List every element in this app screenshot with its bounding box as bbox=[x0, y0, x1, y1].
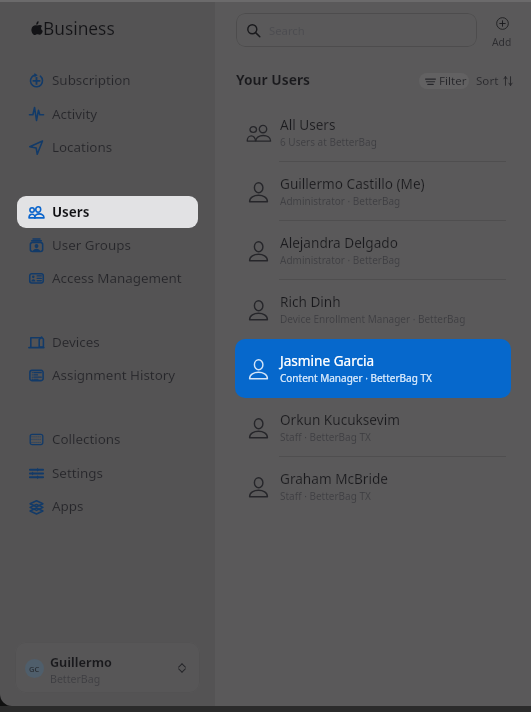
button[interactable]: Jasmine Garcia bbox=[235, 339, 511, 398]
staticText: Users bbox=[52, 203, 90, 221]
button[interactable]: Locations bbox=[17, 131, 198, 163]
staticText: BetterBag bbox=[50, 672, 101, 686]
staticText: Search bbox=[269, 23, 305, 38]
staticText: Administrator · BetterBag bbox=[280, 253, 401, 267]
button[interactable]: Search bbox=[236, 13, 477, 47]
staticText: Rich Dinh bbox=[280, 292, 341, 311]
staticText: Device Enrollment Manager · BetterBag bbox=[280, 312, 466, 326]
staticText: Staff · BetterBag TX bbox=[280, 489, 371, 503]
staticText: All Users bbox=[280, 115, 336, 134]
staticText: Devices bbox=[52, 333, 100, 351]
button[interactable]: Access Management bbox=[17, 262, 198, 294]
button[interactable]: Sort bbox=[476, 73, 514, 89]
staticText: User Groups bbox=[52, 236, 131, 254]
staticText: Access Management bbox=[52, 269, 182, 287]
button[interactable]: Collections bbox=[17, 423, 198, 455]
staticText: Locations bbox=[52, 138, 113, 156]
staticText: Alejandra Delgado bbox=[280, 233, 398, 252]
staticText: Jasmine Garcia bbox=[280, 351, 375, 370]
staticText: Staff · BetterBag TX bbox=[280, 430, 371, 444]
button[interactable]: Orkun Kucuksevim bbox=[235, 398, 511, 457]
staticText: Graham McBride bbox=[280, 469, 388, 488]
staticText: Collections bbox=[52, 430, 121, 448]
button[interactable]: Settings bbox=[17, 457, 198, 489]
staticText: Apps bbox=[52, 497, 84, 515]
staticText: Guillermo bbox=[50, 654, 112, 671]
staticText: Subscription bbox=[52, 71, 131, 89]
button[interactable]: Rich Dinh bbox=[235, 280, 511, 339]
staticText: Settings bbox=[52, 464, 103, 482]
button[interactable]: Activity bbox=[17, 98, 198, 130]
staticText: Add bbox=[492, 35, 512, 49]
staticText: Business bbox=[43, 17, 115, 38]
button[interactable]: Assignment History bbox=[17, 359, 198, 391]
staticText: Guillermo Castillo (Me) bbox=[280, 174, 425, 193]
staticText: Assignment History bbox=[52, 366, 176, 384]
button[interactable]: Graham McBride bbox=[235, 457, 511, 516]
staticText: Sort bbox=[476, 73, 499, 89]
button[interactable]: Subscription bbox=[17, 64, 198, 96]
staticText: Your Users bbox=[236, 70, 310, 89]
button[interactable]: GC bbox=[15, 642, 200, 693]
button[interactable]: Guillermo Castillo (Me) bbox=[235, 162, 511, 221]
staticText: Filter bbox=[439, 73, 467, 89]
button[interactable]: Filter bbox=[419, 73, 469, 89]
button[interactable]: Alejandra Delgado bbox=[235, 221, 511, 280]
button[interactable]: Apps bbox=[17, 490, 198, 522]
staticText: Activity bbox=[52, 105, 98, 123]
staticText: Orkun Kucuksevim bbox=[280, 410, 400, 429]
button[interactable]: User Groups bbox=[17, 229, 198, 261]
staticText: GC bbox=[29, 664, 40, 674]
staticText: Content Manager · BetterBag TX bbox=[280, 371, 432, 385]
button[interactable]: Add bbox=[482, 13, 522, 49]
button[interactable]: All Users bbox=[235, 103, 511, 162]
button[interactable]: Devices bbox=[17, 326, 198, 358]
staticText: 6 Users at BetterBag bbox=[280, 135, 377, 149]
button[interactable]: Users bbox=[17, 196, 198, 228]
staticText: Administrator · BetterBag bbox=[280, 194, 401, 208]
